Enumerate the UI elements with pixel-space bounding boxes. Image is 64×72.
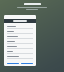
button[interactable]: Form header	[4, 19, 36, 23]
button[interactable]: Cancel	[7, 63, 19, 64]
button[interactable]	[4, 36, 36, 41]
button[interactable]	[4, 31, 36, 36]
button[interactable]	[4, 26, 36, 31]
button[interactable]	[4, 51, 36, 56]
button[interactable]	[4, 56, 36, 61]
button[interactable]: Submit	[21, 63, 33, 64]
button[interactable]	[4, 41, 36, 46]
button[interactable]	[4, 46, 36, 51]
